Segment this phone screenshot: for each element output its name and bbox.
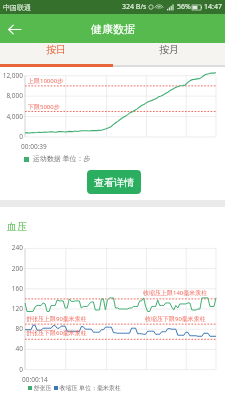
staticText: 中国联通 <box>3 3 31 12</box>
button[interactable]: 按日 <box>0 43 112 56</box>
staticText: 8,000 <box>6 91 23 100</box>
staticText: 血压 <box>7 220 27 233</box>
staticText: 0 <box>19 132 23 141</box>
staticText: 00:00:39 <box>21 142 47 151</box>
staticText: 按日 <box>46 43 66 56</box>
staticText: 下限5000步 <box>28 103 60 111</box>
staticText: 00:00:14 <box>22 375 48 384</box>
staticText: 200 <box>11 264 23 273</box>
staticText: 40 <box>15 344 23 353</box>
staticText: 0 <box>19 365 23 374</box>
staticText: 舒张压下限60毫米汞柱 <box>26 329 87 337</box>
staticText: 上限10000步 <box>28 77 64 85</box>
staticText: 收缩压上限140毫米汞柱 <box>143 289 208 297</box>
staticText: 收缩压下限90毫米汞柱 <box>145 315 206 323</box>
staticText: 4,000 <box>6 112 23 121</box>
staticText: 按月 <box>159 43 179 56</box>
button[interactable]: 查看详情 <box>87 170 141 194</box>
button[interactable]: Back <box>0 15 28 43</box>
staticText: 240 <box>11 243 23 252</box>
staticText: 查看详情 <box>94 176 134 189</box>
staticText: 12,000 <box>2 71 23 80</box>
staticText: 160 <box>11 284 23 293</box>
staticText: 56% <box>177 2 191 12</box>
staticText: 运动数据 单位：步 <box>29 154 91 164</box>
staticText: 14:47 <box>204 2 222 12</box>
staticText: 120 <box>11 304 23 313</box>
staticText: 80 <box>15 324 23 333</box>
button[interactable]: 按月 <box>112 43 225 56</box>
staticText: 324 B/s <box>122 2 147 12</box>
staticText: 健康数据 <box>91 22 135 36</box>
staticText: 舒张压上限90毫米汞柱 <box>26 315 87 323</box>
staticText: 舒张压 <box>32 384 54 392</box>
staticText: 收缩压 单位：毫米汞柱 <box>58 384 122 392</box>
